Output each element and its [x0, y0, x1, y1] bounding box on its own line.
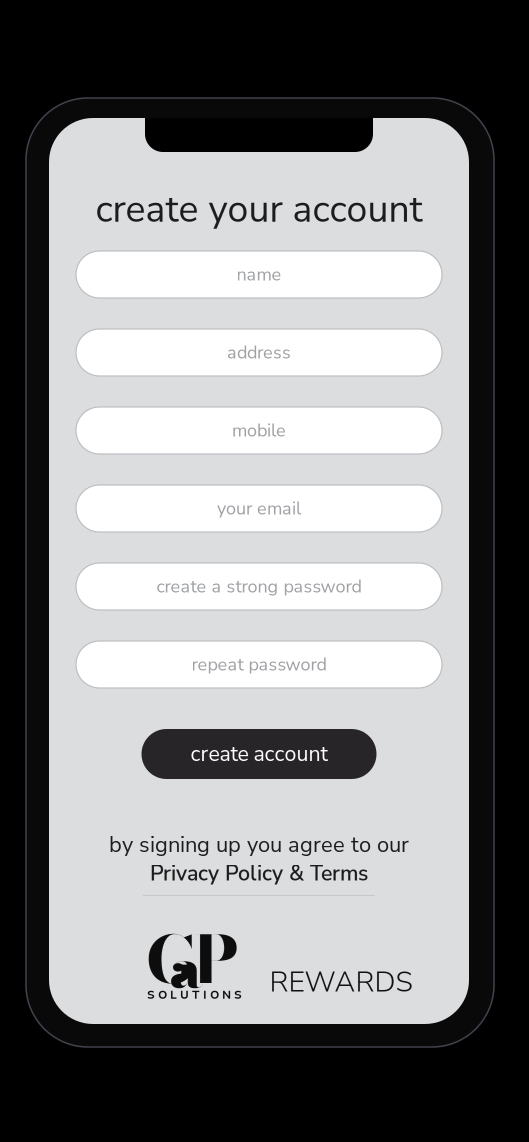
staticText: create your account [95, 184, 422, 235]
button[interactable]: name [76, 251, 442, 298]
button[interactable]: address [76, 329, 442, 376]
button[interactable]: create account [141, 729, 376, 779]
staticText: create account [190, 739, 327, 769]
staticText: repeat password [191, 652, 326, 677]
button[interactable]: mobile [76, 407, 442, 454]
staticText: name [236, 262, 281, 287]
button[interactable]: your email [76, 485, 442, 532]
button[interactable]: Privacy Policy & Terms [150, 859, 368, 888]
staticText: Privacy Policy & Terms [150, 859, 368, 888]
staticText: create a strong password [156, 574, 361, 599]
staticText: a [169, 923, 203, 1011]
staticText: REWARDS [269, 962, 412, 1001]
staticText: by signing up you agree to our [109, 830, 409, 860]
button[interactable]: create a strong password [76, 563, 442, 610]
staticText: G [146, 908, 197, 1010]
staticText: mobile [232, 418, 286, 443]
staticText: address [227, 340, 291, 365]
button[interactable]: repeat password [76, 641, 442, 688]
staticText: P [193, 908, 239, 1010]
staticText: your email [217, 496, 301, 521]
staticText: S O L U T I O N S [147, 987, 242, 1003]
